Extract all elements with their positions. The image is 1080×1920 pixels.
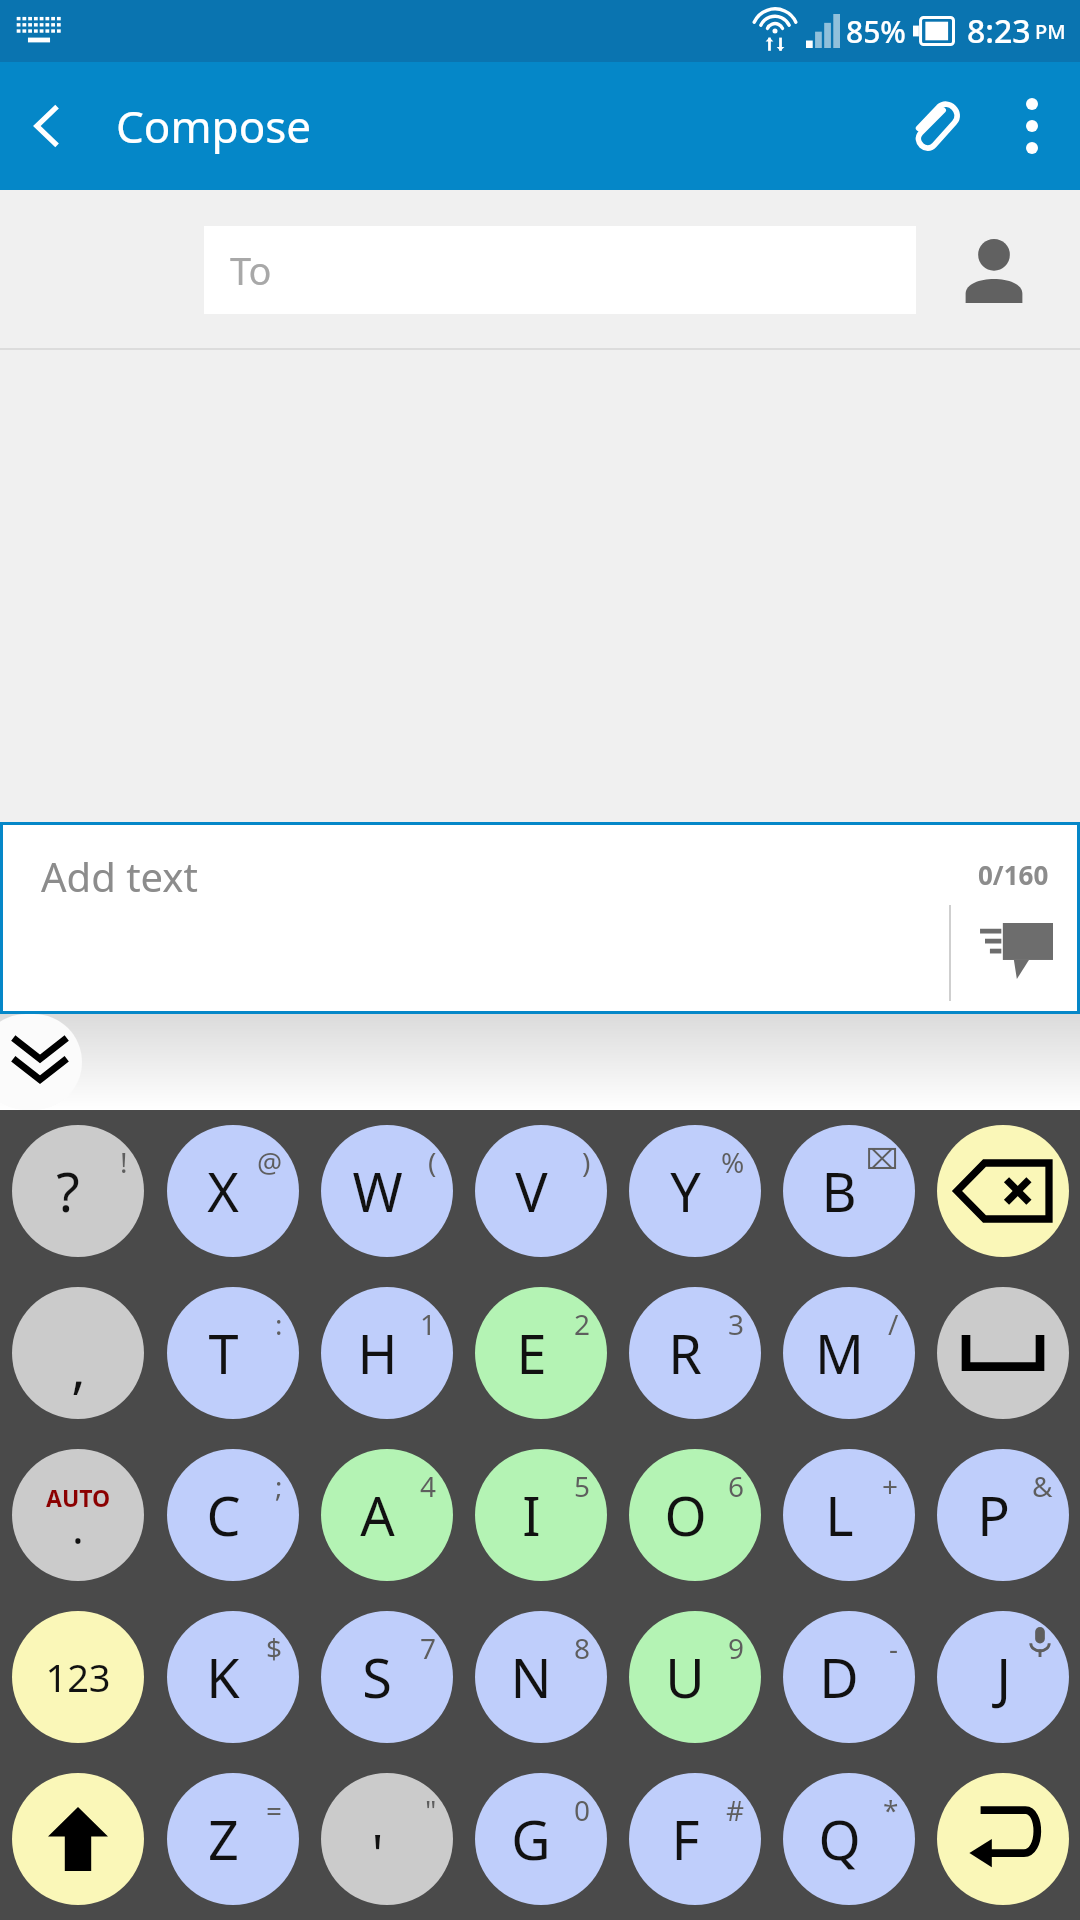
staticText: W [352,1154,403,1228]
button[interactable]: I [475,1449,607,1581]
staticText: " [425,1791,437,1829]
button[interactable]: 123 [12,1611,144,1743]
staticText: / [888,1305,899,1343]
staticText: Q [818,1802,861,1876]
button[interactable]: Enter [937,1773,1069,1905]
staticText: 2 [574,1305,591,1343]
button[interactable]: Shift [12,1773,144,1905]
button[interactable]: X [167,1125,299,1257]
button[interactable]: D [783,1611,915,1743]
button[interactable]: U [629,1611,761,1743]
button[interactable]: , [12,1287,144,1419]
staticText: - [889,1629,899,1667]
staticText: V [515,1154,548,1228]
button[interactable]: Attach [880,74,984,178]
staticText: Add text [41,849,198,903]
staticText: N [510,1640,552,1714]
staticText: 1 [420,1305,437,1343]
staticText: F [671,1802,700,1876]
staticText: H [357,1316,398,1390]
button[interactable]: To [204,226,916,314]
staticText: 9 [728,1629,745,1667]
staticText: L [825,1478,854,1552]
button[interactable]: ' [321,1773,453,1905]
staticText: Compose [116,96,312,156]
staticText: D [819,1640,859,1714]
button[interactable]: F [629,1773,761,1905]
staticText: Y [670,1154,701,1228]
button[interactable]: G [475,1773,607,1905]
button[interactable]: ? [12,1125,144,1257]
button[interactable]: T [167,1287,299,1419]
button[interactable]: L [783,1449,915,1581]
staticText: 3 [728,1305,745,1343]
button[interactable]: E [475,1287,607,1419]
staticText: E [516,1316,547,1390]
button[interactable]: P [937,1449,1069,1581]
button[interactable]: V [475,1125,607,1257]
button[interactable]: A [321,1449,453,1581]
staticText: = [266,1791,283,1829]
button[interactable]: J [937,1611,1069,1743]
staticText: K [206,1640,240,1714]
button[interactable]: S [321,1611,453,1743]
button[interactable]: O [629,1449,761,1581]
button[interactable]: Z [167,1773,299,1905]
staticText: 0 [574,1791,591,1829]
staticText: 5 [574,1467,591,1505]
button[interactable]: Add text [3,825,1077,1011]
button[interactable]: R [629,1287,761,1419]
staticText: @ [257,1143,283,1181]
staticText: P [977,1478,1010,1552]
staticText: M [815,1316,864,1390]
staticText: ; [275,1467,283,1505]
staticText: J [996,1640,1011,1714]
staticText: 0/160 [978,857,1049,892]
button[interactable]: H [321,1287,453,1419]
button[interactable]: Backspace [937,1125,1069,1257]
staticText: O [664,1478,707,1552]
staticText: S [362,1640,392,1714]
staticText: * [883,1791,899,1829]
staticText: 8 [574,1629,591,1667]
staticText: T [208,1316,239,1390]
button[interactable]: Q [783,1773,915,1905]
button[interactable]: Message type [969,905,1061,997]
staticText: U [665,1640,705,1714]
button[interactable]: K [167,1611,299,1743]
staticText: 7 [420,1629,437,1667]
button[interactable]: N [475,1611,607,1743]
staticText: To [230,244,272,296]
button[interactable]: Pick contact [948,224,1040,316]
staticText: 6 [728,1467,745,1505]
button[interactable]: M [783,1287,915,1419]
staticText: 8:23 [967,9,1031,53]
button[interactable]: C [167,1449,299,1581]
staticText: 123 [45,1651,111,1703]
staticText: A [360,1478,395,1552]
staticText: % [721,1143,745,1181]
staticText: Z [208,1802,239,1876]
staticText: I [522,1478,541,1552]
staticText: PM [1035,18,1066,45]
button[interactable]: Space [937,1287,1069,1419]
staticText: C [206,1478,241,1552]
staticText: ) [582,1143,591,1181]
button[interactable]: AUTO [12,1449,144,1581]
staticText: G [511,1802,551,1876]
button[interactable]: Hide keyboard [0,1014,82,1110]
staticText: ! [120,1143,128,1181]
staticText: ' [371,1816,384,1890]
staticText: 85% [846,11,906,52]
staticText: . [72,1497,84,1557]
button[interactable]: Back [0,78,96,174]
button[interactable]: Y [629,1125,761,1257]
button[interactable]: B [783,1125,915,1257]
staticText: ( [428,1143,437,1181]
staticText: AUTO [46,1482,111,1513]
staticText: X [207,1154,239,1228]
button[interactable]: W [321,1125,453,1257]
button[interactable]: More options [984,78,1080,174]
staticText: B [821,1154,857,1228]
staticText: $ [266,1629,283,1667]
